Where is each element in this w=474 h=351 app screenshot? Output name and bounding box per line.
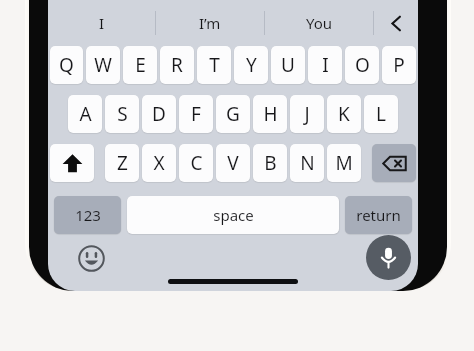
button[interactable]: I	[48, 0, 155, 46]
button[interactable]: C	[179, 144, 213, 182]
button[interactable]: W	[86, 46, 120, 84]
button[interactable]: H	[253, 95, 287, 133]
button[interactable]: Y	[234, 46, 268, 84]
staticText: J	[304, 101, 310, 127]
staticText: O	[355, 52, 370, 78]
button[interactable]: I	[308, 46, 342, 84]
button[interactable]: L	[364, 95, 398, 133]
staticText: space	[213, 205, 254, 225]
staticText: C	[190, 150, 203, 176]
button[interactable]: D	[142, 95, 176, 133]
staticText: Z	[117, 150, 128, 176]
button[interactable]: Z	[105, 144, 139, 182]
button[interactable]: space	[127, 196, 339, 234]
staticText: I	[322, 52, 329, 78]
staticText: R	[171, 52, 183, 78]
staticText: E	[135, 52, 146, 78]
button[interactable]: T	[197, 46, 231, 84]
button[interactable]: S	[105, 95, 139, 133]
staticText: S	[117, 101, 128, 127]
staticText: Y	[246, 52, 257, 78]
button[interactable]: U	[271, 46, 305, 84]
button[interactable]: F	[179, 95, 213, 133]
button[interactable]: P	[382, 46, 416, 84]
staticText: G	[226, 101, 240, 127]
staticText: M	[335, 150, 353, 176]
button[interactable]: M	[327, 144, 361, 182]
button[interactable]: Q	[50, 46, 83, 84]
staticText: K	[338, 101, 350, 127]
button[interactable]: E	[123, 46, 157, 84]
staticText: N	[300, 150, 315, 176]
button[interactable]: return	[345, 196, 412, 234]
button[interactable]: O	[345, 46, 379, 84]
button[interactable]: Hide predictions	[374, 0, 418, 46]
button[interactable]: R	[160, 46, 194, 84]
button[interactable]: You	[265, 0, 373, 46]
button[interactable]: Emoji keyboard	[72, 239, 110, 277]
staticText: F	[191, 101, 201, 127]
button[interactable]: V	[216, 144, 250, 182]
button[interactable]: I’m	[156, 0, 264, 46]
button[interactable]: K	[327, 95, 361, 133]
staticText: A	[79, 101, 92, 127]
staticText: B	[264, 150, 277, 176]
staticText: 123	[75, 205, 101, 225]
staticText: W	[94, 52, 112, 78]
staticText: Q	[59, 52, 74, 78]
button[interactable]: J	[290, 95, 324, 133]
staticText: T	[209, 52, 220, 78]
button[interactable]: A	[68, 95, 102, 133]
button[interactable]: 123	[54, 196, 121, 234]
staticText: I’m	[199, 13, 221, 33]
button[interactable]: X	[142, 144, 176, 182]
staticText: H	[263, 101, 278, 127]
button[interactable]: B	[253, 144, 287, 182]
button[interactable]: Delete	[372, 144, 416, 182]
button[interactable]: N	[290, 144, 324, 182]
staticText: D	[152, 101, 166, 127]
button[interactable]: Shift	[50, 144, 94, 182]
button[interactable]: Dictation	[366, 235, 411, 280]
staticText: V	[227, 150, 239, 176]
staticText: return	[356, 205, 401, 225]
staticText: I	[99, 13, 105, 33]
staticText: You	[306, 13, 333, 33]
staticText: L	[376, 101, 386, 127]
staticText: U	[281, 52, 295, 78]
staticText: P	[393, 52, 405, 78]
button[interactable]: G	[216, 95, 250, 133]
staticText: X	[153, 150, 165, 176]
